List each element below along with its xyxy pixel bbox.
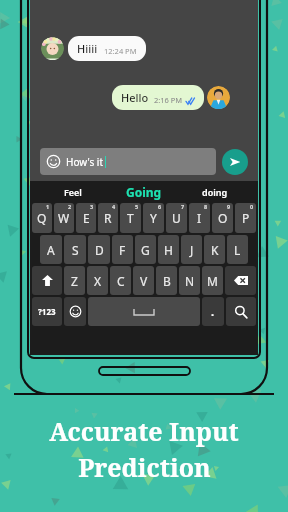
- staticText: 0: [250, 203, 254, 210]
- button[interactable]: B: [156, 266, 177, 295]
- staticText: T: [127, 210, 134, 226]
- staticText: W: [58, 210, 70, 226]
- button[interactable]: 8: [189, 203, 210, 233]
- staticText: B: [163, 273, 171, 289]
- button[interactable]: 6: [143, 203, 164, 233]
- button[interactable]: A: [40, 235, 62, 264]
- staticText: Z: [71, 273, 78, 289]
- button[interactable]: H: [158, 235, 179, 264]
- staticText: 5: [135, 203, 139, 210]
- staticText: P: [242, 210, 250, 226]
- button[interactable]: Going: [108, 181, 179, 203]
- button[interactable]: D: [88, 235, 110, 264]
- staticText: J: [190, 242, 194, 258]
- button[interactable]: Space: [88, 297, 200, 326]
- button[interactable]: Your avatar: [207, 86, 230, 109]
- staticText: O: [218, 210, 228, 226]
- staticText: N: [185, 273, 195, 289]
- staticText: Prediction: [78, 450, 211, 484]
- button[interactable]: Backspace: [225, 266, 256, 295]
- button[interactable]: Z: [64, 266, 85, 295]
- staticText: K: [211, 242, 219, 258]
- button[interactable]: M: [202, 266, 223, 295]
- button[interactable]: X: [87, 266, 108, 295]
- staticText: .: [211, 304, 215, 319]
- button[interactable]: How's it: [40, 148, 216, 175]
- button[interactable]: 9: [212, 203, 233, 233]
- button[interactable]: Hello: [112, 85, 204, 110]
- button[interactable]: C: [110, 266, 131, 295]
- staticText: U: [172, 210, 181, 226]
- button[interactable]: G: [135, 235, 156, 264]
- staticText: A: [47, 242, 55, 258]
- button[interactable]: 5: [120, 203, 141, 233]
- staticText: 6: [158, 203, 162, 210]
- staticText: 7: [181, 203, 185, 210]
- staticText: V: [140, 273, 148, 289]
- staticText: X: [94, 273, 102, 289]
- staticText: Accurate Input: [49, 414, 239, 448]
- button[interactable]: Search: [226, 297, 256, 326]
- staticText: 2: [68, 203, 72, 210]
- button[interactable]: L: [227, 235, 248, 264]
- staticText: H: [164, 242, 173, 258]
- staticText: C: [117, 273, 125, 289]
- staticText: How's it: [66, 155, 104, 169]
- staticText: D: [95, 242, 104, 258]
- button[interactable]: 2: [54, 203, 74, 233]
- staticText: Y: [150, 210, 157, 226]
- button[interactable]: .: [202, 297, 224, 326]
- button[interactable]: F: [112, 235, 133, 264]
- staticText: Hiiii: [77, 41, 98, 56]
- staticText: 1: [46, 203, 50, 210]
- staticText: 12:24 PM: [104, 46, 137, 56]
- button[interactable]: Contact avatar: [41, 37, 64, 60]
- staticText: E: [83, 210, 90, 226]
- button[interactable]: 7: [166, 203, 187, 233]
- button[interactable]: V: [133, 266, 154, 295]
- button[interactable]: doing: [179, 181, 250, 203]
- staticText: L: [234, 242, 241, 258]
- staticText: R: [104, 210, 112, 226]
- button[interactable]: K: [204, 235, 225, 264]
- button[interactable]: 4: [98, 203, 118, 233]
- staticText: 4: [112, 203, 116, 210]
- staticText: I: [197, 210, 202, 226]
- button[interactable]: 3: [76, 203, 96, 233]
- staticText: 8: [204, 203, 208, 210]
- staticText: Feel: [64, 186, 82, 198]
- staticText: G: [141, 242, 150, 258]
- button[interactable]: Shift: [32, 266, 62, 295]
- staticText: ?123: [38, 306, 56, 317]
- button[interactable]: S: [64, 235, 86, 264]
- button[interactable]: ?123: [32, 297, 62, 326]
- staticText: S: [72, 242, 79, 258]
- staticText: Going: [126, 184, 162, 200]
- staticText: Q: [37, 210, 47, 226]
- staticText: 3: [90, 203, 94, 210]
- button[interactable]: N: [179, 266, 200, 295]
- staticText: M: [207, 273, 218, 289]
- staticText: 2:16 PM: [154, 95, 183, 105]
- button[interactable]: J: [181, 235, 202, 264]
- staticText: F: [119, 242, 126, 258]
- staticText: 9: [227, 203, 231, 210]
- button[interactable]: Feel: [38, 181, 108, 203]
- button[interactable]: 0: [235, 203, 256, 233]
- button[interactable]: Hiiii: [68, 36, 146, 61]
- button[interactable]: Emoji: [64, 297, 86, 326]
- button[interactable]: Send: [222, 149, 248, 175]
- staticText: Hello: [121, 90, 149, 105]
- staticText: doing: [202, 186, 228, 198]
- button[interactable]: 1: [32, 203, 52, 233]
